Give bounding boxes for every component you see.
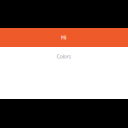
staticText: Colors [56,53,71,60]
staticText: Hi [61,34,67,41]
